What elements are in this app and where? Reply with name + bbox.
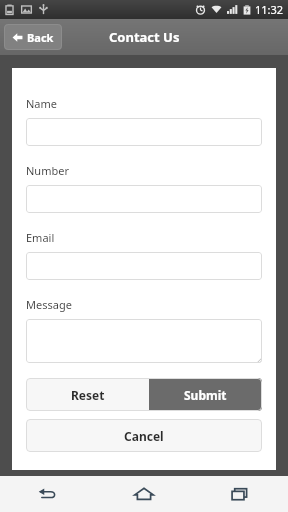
staticText: 11:32 <box>255 2 284 17</box>
button[interactable]: Recent apps <box>192 476 288 512</box>
staticText: Back <box>27 30 54 45</box>
button[interactable] <box>26 252 262 280</box>
staticText: Number <box>26 163 69 178</box>
staticText: Message <box>26 297 72 312</box>
staticText: Email <box>26 230 55 245</box>
button[interactable]: Cancel <box>26 419 262 452</box>
staticText: Reset <box>71 387 105 403</box>
staticText: Name <box>26 96 58 111</box>
button[interactable]: Home <box>96 476 192 512</box>
button[interactable]: Back <box>4 24 62 50</box>
staticText: Contact Us <box>109 28 180 46</box>
button[interactable] <box>26 319 262 363</box>
button[interactable] <box>26 185 262 213</box>
button[interactable]: Reset <box>26 378 149 411</box>
staticText: Cancel <box>124 428 164 444</box>
button[interactable]: Back <box>0 476 96 512</box>
button[interactable] <box>26 118 262 146</box>
staticText: Submit <box>184 387 227 403</box>
button[interactable]: Submit <box>149 378 262 411</box>
